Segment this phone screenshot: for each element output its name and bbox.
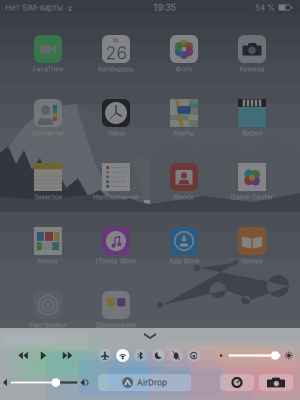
button[interactable]: Не беспокоить: [151, 348, 166, 363]
staticText: Киоск: [174, 193, 194, 201]
staticText: 54 %: [255, 3, 275, 12]
button[interactable]: Карты: [150, 99, 218, 141]
button[interactable]: Bluetooth: [133, 348, 148, 363]
staticText: Вс: [113, 37, 119, 43]
button[interactable]: Напоминания: [82, 163, 150, 205]
staticText: Контакты: [32, 129, 63, 137]
button[interactable]: Блокировка ориентации: [186, 348, 202, 363]
button[interactable]: Часы: [82, 99, 150, 141]
button[interactable]: Воспроизвести: [39, 349, 48, 362]
button[interactable]: Wi-Fi: [115, 348, 130, 363]
button[interactable]: Звук: [168, 348, 184, 363]
staticText: FaceTime: [32, 65, 63, 73]
staticText: Карты: [174, 129, 194, 137]
button[interactable]: iTunes Store: [82, 227, 150, 269]
button[interactable]: Камера: [259, 374, 293, 391]
staticText: Нет SIM-карты: [5, 3, 63, 12]
staticText: Дополнения: [95, 321, 136, 329]
staticText: Часы: [107, 129, 125, 137]
staticText: 26: [105, 42, 126, 63]
staticText: Камера: [239, 65, 264, 73]
button[interactable]: Киоск: [14, 227, 82, 269]
button[interactable]: iBooks: [218, 227, 286, 269]
button[interactable]: Авиарежим: [97, 348, 113, 363]
staticText: Заметки: [34, 193, 62, 201]
button[interactable]: Видео: [218, 99, 286, 141]
staticText: Видео: [242, 129, 262, 137]
button[interactable]: Камера: [218, 35, 286, 77]
staticText: Настройки: [30, 321, 66, 329]
staticText: Game Center: [230, 193, 273, 201]
button[interactable]: Следующий трек: [61, 350, 74, 361]
button[interactable]: App Store: [150, 227, 218, 269]
button[interactable]: Таймер: [220, 374, 254, 391]
staticText: Фото: [175, 65, 192, 73]
staticText: iTunes Store: [96, 257, 136, 265]
button[interactable]: Контакты: [14, 99, 82, 141]
staticText: Киоск: [38, 257, 58, 265]
button[interactable]: Game Center: [218, 163, 286, 205]
button[interactable]: Вс: [82, 35, 150, 77]
staticText: iBooks: [241, 257, 263, 265]
button[interactable]: FaceTime: [14, 35, 82, 77]
staticText: Напоминания: [93, 193, 139, 201]
button[interactable]: Дополнения: [82, 291, 150, 333]
staticText: AirDrop: [137, 378, 167, 387]
button[interactable]: Киоск: [150, 163, 218, 205]
button[interactable]: Предыдущий трек: [16, 350, 30, 361]
staticText: App Store: [168, 257, 199, 265]
button[interactable]: Заметки: [14, 163, 82, 205]
button[interactable]: Фото: [150, 35, 218, 77]
staticText: 19:35: [153, 2, 175, 13]
staticText: Календарь: [98, 65, 134, 73]
button[interactable]: Настройки: [14, 291, 82, 333]
button[interactable]: AirDrop: [98, 374, 191, 391]
